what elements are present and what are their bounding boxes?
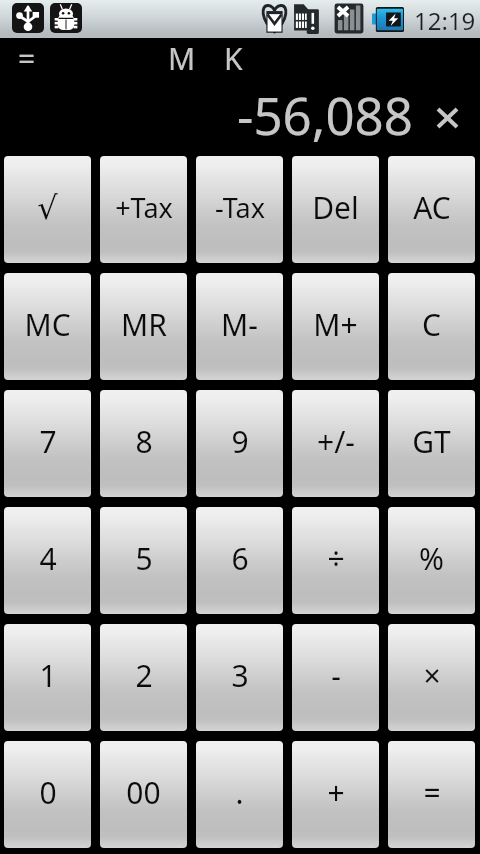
button[interactable]: MR — [100, 273, 187, 380]
staticText: . — [235, 772, 244, 813]
staticText: = — [423, 772, 441, 813]
staticText: × — [423, 655, 441, 696]
staticText: GT — [412, 421, 451, 462]
staticText: = — [18, 38, 36, 79]
staticText: 12:19 — [414, 4, 476, 37]
staticText: + — [327, 772, 345, 813]
button[interactable]: M+ — [292, 273, 379, 380]
button[interactable]: 3 — [196, 624, 283, 731]
staticText: M — [168, 38, 196, 79]
staticText: M+ — [313, 304, 358, 345]
staticText: 7 — [39, 421, 57, 462]
button[interactable]: +Tax — [100, 156, 187, 263]
other: USB connected — [12, 3, 44, 33]
staticText: 3 — [231, 655, 249, 696]
button[interactable]: × — [388, 624, 475, 731]
button[interactable]: 1 — [4, 624, 91, 731]
button[interactable]: 4 — [4, 507, 91, 614]
button[interactable]: 9 — [196, 390, 283, 497]
staticText: 1 — [39, 655, 57, 696]
staticText: % — [419, 538, 444, 579]
button[interactable]: 7 — [4, 390, 91, 497]
button[interactable]: 6 — [196, 507, 283, 614]
button[interactable]: Pending operation: multiply — [430, 101, 464, 134]
staticText: 4 — [39, 538, 57, 579]
staticText: 00 — [126, 772, 161, 813]
staticText: ÷ — [327, 538, 345, 579]
staticText: AC — [413, 187, 451, 228]
other: No signal — [334, 3, 364, 34]
staticText: 9 — [231, 421, 249, 462]
button[interactable]: ÷ — [292, 507, 379, 614]
staticText: MC — [24, 304, 71, 345]
button[interactable]: . — [196, 741, 283, 848]
button[interactable]: Del — [292, 156, 379, 263]
staticText: -Tax — [215, 189, 265, 226]
button[interactable]: 0 — [4, 741, 91, 848]
button[interactable]: 5 — [100, 507, 187, 614]
button[interactable]: -Tax — [196, 156, 283, 263]
staticText: +/- — [317, 421, 355, 462]
button[interactable]: 2 — [100, 624, 187, 731]
button[interactable]: AC — [388, 156, 475, 263]
staticText: 2 — [135, 655, 153, 696]
other: New message — [260, 3, 289, 34]
other: USB debugging connected — [50, 3, 82, 33]
staticText: 0 — [39, 772, 57, 813]
staticText: 6 — [231, 538, 249, 579]
staticText: Del — [312, 187, 359, 228]
staticText: K — [224, 38, 243, 79]
staticText: √ — [37, 189, 58, 226]
button[interactable]: % — [388, 507, 475, 614]
staticText: MR — [121, 304, 167, 345]
button[interactable]: √ — [4, 156, 91, 263]
button[interactable]: + — [292, 741, 379, 848]
staticText: - — [331, 655, 341, 696]
other: SD card — [288, 2, 320, 34]
staticText: M- — [221, 304, 258, 345]
button[interactable]: GT — [388, 390, 475, 497]
staticText: +Tax — [115, 189, 173, 226]
button[interactable]: 8 — [100, 390, 187, 497]
button[interactable]: MC — [4, 273, 91, 380]
button[interactable]: +/- — [292, 390, 379, 497]
button[interactable]: C — [388, 273, 475, 380]
button[interactable]: - — [292, 624, 379, 731]
staticText: C — [422, 304, 441, 345]
button[interactable]: 00 — [100, 741, 187, 848]
button[interactable]: = — [388, 741, 475, 848]
button[interactable]: M- — [196, 273, 283, 380]
other: Battery charging — [372, 7, 404, 32]
staticText: 8 — [135, 421, 153, 462]
staticText: 5 — [135, 538, 153, 579]
staticText: -56,088 — [237, 80, 413, 149]
